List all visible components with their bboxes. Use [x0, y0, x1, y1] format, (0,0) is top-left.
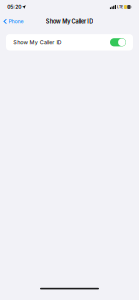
staticText: Phone — [8, 18, 23, 25]
staticText: Show My Caller ID — [46, 18, 93, 25]
staticText: Show My Caller ID — [13, 39, 61, 46]
button[interactable]: Show My Caller ID — [6, 34, 133, 50]
button[interactable]: Phone — [0, 16, 23, 27]
staticText: 05:20 — [7, 4, 21, 10]
staticText: LTE — [117, 5, 123, 9]
